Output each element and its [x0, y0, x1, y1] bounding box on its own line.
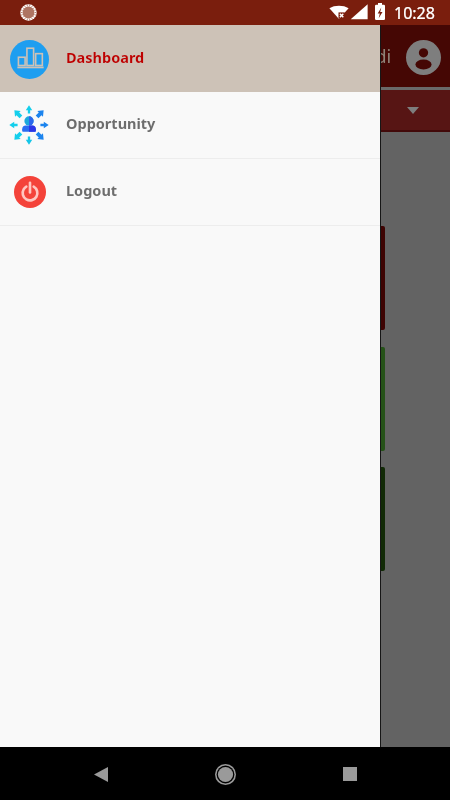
- staticText: Beranda Pegawai Kemendikbudristek Jadi: [39, 44, 392, 69]
- staticText: Logout: [66, 180, 118, 200]
- button[interactable]: Statistik kartu 3: [381, 467, 450, 571]
- staticText: 10:28: [394, 2, 435, 24]
- button[interactable]: Home: [201, 750, 249, 798]
- staticText: Opportunity: [66, 113, 156, 133]
- button[interactable]: Expand: [395, 93, 430, 128]
- button[interactable]: Back: [77, 750, 125, 798]
- staticText: Dashboard: [66, 47, 145, 67]
- button[interactable]: Opportunity: [0, 92, 380, 158]
- button[interactable]: Account: [400, 34, 446, 80]
- button[interactable]: Statistik kartu 1: [381, 226, 450, 330]
- button[interactable]: Logout: [0, 159, 380, 225]
- button[interactable]: Dashboard: [0, 25, 380, 92]
- button[interactable]: Recents: [326, 750, 374, 798]
- button[interactable]: Statistik kartu 2: [381, 347, 450, 451]
